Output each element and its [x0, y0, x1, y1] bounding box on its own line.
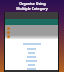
button[interactable] [5, 34, 58, 38]
button[interactable] [5, 26, 58, 30]
staticText: Organise Using [19, 1, 46, 6]
button[interactable] [5, 30, 58, 34]
staticText: Multiple Category [16, 6, 48, 11]
